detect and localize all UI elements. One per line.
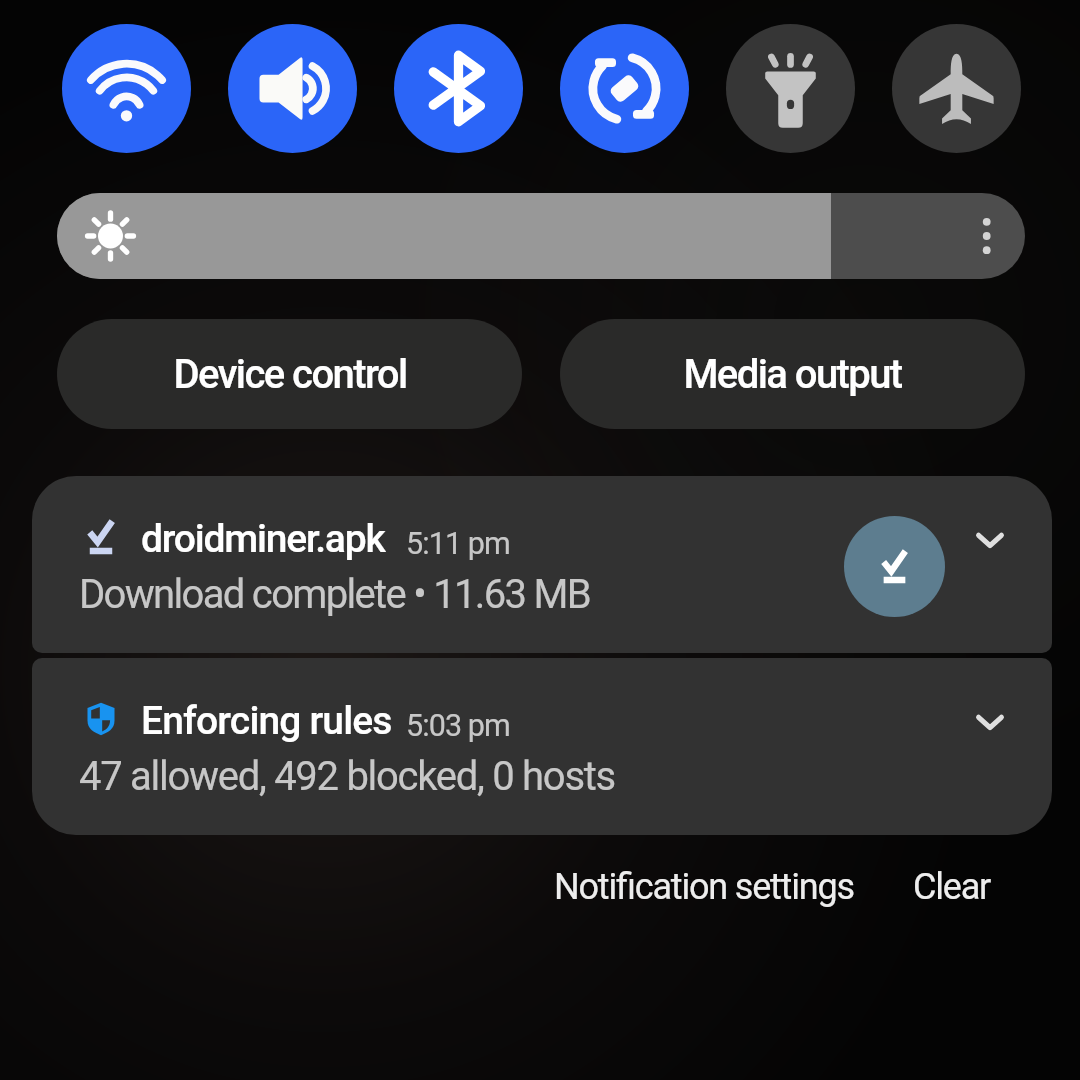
button[interactable]: Wi-Fi: [62, 24, 191, 153]
button[interactable]: Notification settings: [540, 852, 868, 922]
staticText: 5:03 pm: [406, 708, 510, 744]
button[interactable]: Brightness: [57, 193, 1025, 279]
staticText: Download complete • 11.63 MB: [79, 571, 591, 618]
staticText: Media output: [683, 351, 902, 398]
button[interactable]: Expand notification: [958, 508, 1022, 572]
button[interactable]: Sound: [228, 24, 357, 153]
staticText: Notification settings: [554, 866, 854, 908]
button[interactable]: Clear: [899, 852, 1005, 922]
button[interactable]: Media output: [560, 319, 1025, 429]
button[interactable]: Auto rotate: [560, 24, 689, 153]
staticText: 47 allowed, 492 blocked, 0 hosts: [79, 753, 615, 800]
staticText: Device control: [173, 351, 407, 398]
button[interactable]: Device control: [57, 319, 522, 429]
staticText: Clear: [913, 866, 991, 908]
staticText: 5:11 pm: [406, 526, 510, 562]
staticText: Enforcing rules: [141, 698, 392, 744]
staticText: droidminer.apk: [141, 516, 385, 562]
button[interactable]: droidminer.apk: [32, 476, 1052, 653]
button[interactable]: Flashlight: [726, 24, 855, 153]
button[interactable]: Download complete: [844, 516, 945, 617]
button[interactable]: Bluetooth: [394, 24, 523, 153]
button[interactable]: Enforcing rules: [32, 658, 1052, 835]
button[interactable]: Expand notification: [958, 690, 1022, 754]
button[interactable]: Airplane mode: [892, 24, 1021, 153]
